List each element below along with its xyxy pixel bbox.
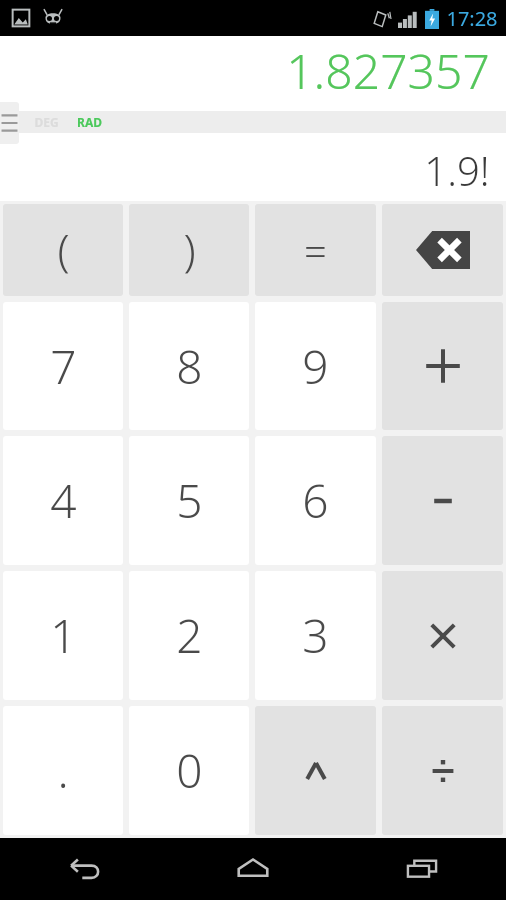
button[interactable]: DEG — [32, 114, 61, 130]
button[interactable]: 0 — [129, 706, 249, 835]
button[interactable]: Back — [0, 838, 168, 900]
staticText: 1.827357 — [286, 38, 490, 103]
staticText: 17:28 — [446, 5, 498, 32]
button[interactable]: 5 — [129, 436, 249, 565]
staticText: RAD — [77, 114, 102, 130]
button[interactable]: Multiply — [382, 571, 503, 700]
button[interactable]: . — [3, 706, 123, 835]
staticText: 5 — [176, 469, 203, 532]
button[interactable]: Home — [168, 838, 337, 900]
button[interactable]: ) — [129, 204, 249, 296]
button[interactable]: Open panel — [0, 102, 19, 144]
button[interactable]: 2 — [129, 571, 249, 700]
staticText: 0 — [176, 739, 203, 802]
staticText: 1 — [50, 604, 77, 667]
button[interactable]: 9 — [255, 302, 376, 430]
button[interactable]: 7 — [3, 302, 123, 430]
button[interactable]: Plus — [382, 302, 503, 430]
button[interactable]: 4 — [3, 436, 123, 565]
staticText: 1.9! — [424, 143, 490, 195]
staticText: ( — [57, 220, 70, 280]
button[interactable]: 6 — [255, 436, 376, 565]
button[interactable]: = — [255, 204, 376, 296]
staticText: 3 — [302, 604, 329, 667]
button[interactable]: 3 — [255, 571, 376, 700]
button[interactable]: 1 — [3, 571, 123, 700]
staticText: ) — [183, 220, 196, 280]
button[interactable]: Divide — [382, 706, 503, 835]
button[interactable]: Recent apps — [337, 838, 506, 900]
button[interactable]: Minus — [382, 436, 503, 565]
staticText: 7 — [50, 335, 77, 398]
staticText: 4 — [50, 469, 77, 532]
staticText: . — [57, 739, 69, 802]
button[interactable]: ( — [3, 204, 123, 296]
staticText: 6 — [302, 469, 329, 532]
staticText: = — [304, 223, 327, 277]
staticText: 8 — [176, 335, 203, 398]
button[interactable]: Backspace — [382, 204, 503, 296]
button[interactable]: RAD — [75, 114, 104, 130]
staticText: 9 — [302, 335, 329, 398]
staticText: 2 — [176, 604, 203, 667]
button[interactable]: 8 — [129, 302, 249, 430]
button[interactable]: Power — [255, 706, 376, 835]
staticText: DEG — [34, 114, 59, 130]
